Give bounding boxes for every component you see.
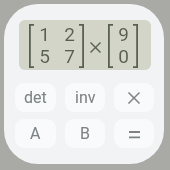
other: Multiply — [129, 93, 139, 103]
staticText: 9 — [118, 23, 129, 45]
other: Equals — [129, 131, 140, 140]
button[interactable]: inv — [65, 83, 105, 112]
button[interactable]: Multiply — [114, 83, 154, 112]
staticText: det — [24, 88, 47, 107]
button[interactable]: B — [65, 119, 105, 148]
staticText: A — [30, 124, 41, 143]
button[interactable]: Equals — [114, 119, 154, 148]
staticText: 0 — [118, 45, 129, 67]
staticText: 1 — [39, 23, 50, 45]
staticText: B — [80, 124, 90, 143]
staticText: inv — [75, 88, 96, 107]
staticText: 5 — [39, 45, 50, 67]
staticText: 2 — [64, 23, 75, 45]
button[interactable]: det — [15, 83, 56, 112]
button[interactable]: A — [15, 119, 56, 148]
staticText: 7 — [64, 45, 75, 67]
